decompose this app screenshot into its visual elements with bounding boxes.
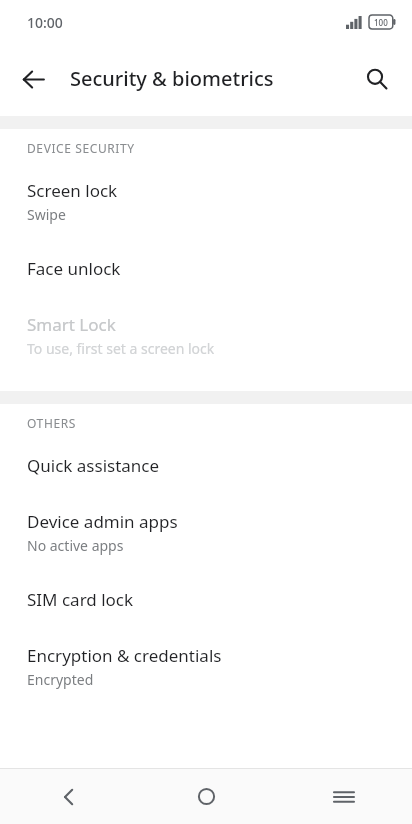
button[interactable]: Screen lock — [0, 163, 412, 241]
button[interactable]: Face unlock — [0, 241, 412, 297]
staticText: Encryption & credentials — [27, 644, 222, 667]
staticText: Face unlock — [27, 257, 121, 280]
staticText: 10:00 — [27, 13, 63, 32]
staticText: DEVICE SECURITY — [27, 140, 135, 156]
button[interactable]: SIM card lock — [0, 572, 412, 628]
button[interactable]: Encryption & credentials — [0, 628, 412, 706]
staticText: SIM card lock — [27, 588, 134, 611]
button[interactable]: Recent apps — [275, 769, 412, 824]
staticText: Smart Lock — [27, 313, 116, 336]
staticText: Encrypted — [27, 670, 94, 689]
staticText: OTHERS — [27, 415, 76, 431]
staticText: Device admin apps — [27, 510, 178, 533]
button[interactable]: Smart Lock — [0, 297, 412, 375]
button[interactable]: Back — [10, 56, 56, 102]
staticText: Swipe — [27, 205, 66, 224]
staticText: To use, first set a screen lock — [27, 339, 215, 358]
staticText: Security & biometrics — [70, 65, 274, 92]
button[interactable]: Search — [354, 56, 400, 102]
button[interactable]: Quick assistance — [0, 438, 412, 494]
staticText: 100 — [374, 17, 388, 28]
button[interactable]: Home — [138, 769, 275, 824]
staticText: Quick assistance — [27, 454, 160, 477]
button[interactable]: Back — [0, 769, 138, 824]
staticText: Screen lock — [27, 179, 118, 202]
button[interactable]: Device admin apps — [0, 494, 412, 572]
staticText: No active apps — [27, 536, 124, 555]
